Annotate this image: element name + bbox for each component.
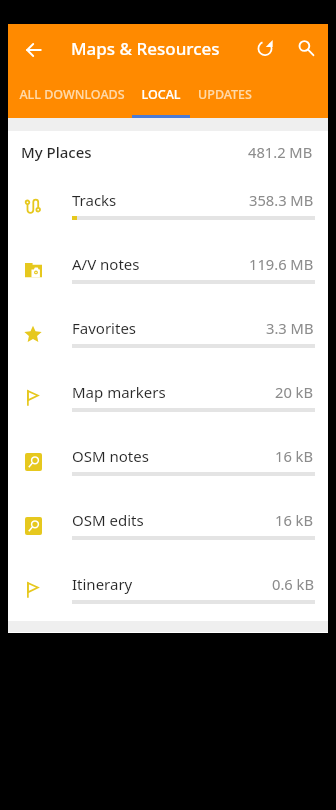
button[interactable]: Favorites (8, 303, 328, 367)
staticText: OSM edits (72, 510, 144, 530)
button[interactable]: OSM edits (8, 495, 328, 559)
staticText: Maps & Resources (71, 37, 220, 60)
staticText: 16 kB (275, 446, 314, 466)
button[interactable]: ALL DOWNLOADS (14, 76, 129, 118)
staticText: UPDATES (198, 86, 252, 103)
button[interactable]: UPDATES (189, 76, 261, 118)
staticText: Favorites (72, 318, 137, 338)
staticText: Map markers (72, 382, 166, 402)
button[interactable]: Itinerary (8, 559, 328, 623)
button[interactable]: Map markers (8, 367, 328, 431)
staticText: ALL DOWNLOADS (19, 86, 125, 103)
button[interactable]: Search (289, 32, 323, 66)
staticText: My Places (21, 142, 92, 162)
staticText: 481.2 MB (248, 142, 313, 162)
button[interactable]: OSM notes (8, 431, 328, 495)
button[interactable]: A/V notes (8, 239, 328, 303)
staticText: 358.3 MB (249, 190, 314, 210)
button[interactable]: Tracks (8, 175, 328, 239)
staticText: Tracks (72, 190, 117, 210)
button[interactable]: Back (17, 33, 51, 67)
staticText: Itinerary (72, 574, 133, 594)
button[interactable]: Refresh (248, 31, 282, 65)
staticText: 119.6 MB (249, 254, 314, 274)
staticText: LOCAL (141, 86, 181, 103)
staticText: 0.6 kB (272, 574, 314, 594)
button[interactable]: LOCAL (132, 76, 190, 118)
staticText: 3.3 MB (266, 318, 314, 338)
staticText: A/V notes (72, 254, 140, 274)
staticText: OSM notes (72, 446, 149, 466)
button[interactable]: My Places (8, 131, 328, 175)
staticText: 16 kB (275, 510, 314, 530)
staticText: 20 kB (275, 382, 314, 402)
